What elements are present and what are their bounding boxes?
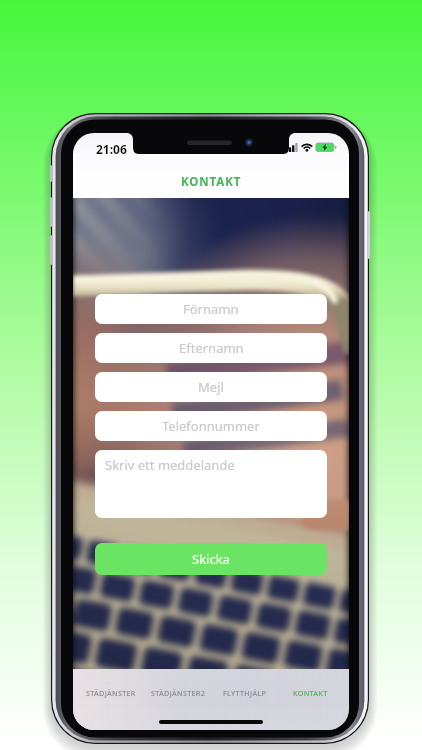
staticText: Förnamn	[183, 300, 239, 318]
button[interactable]: Förnamn	[95, 294, 327, 324]
button[interactable]: Efternamn	[95, 333, 327, 363]
button[interactable]: Skriv ett meddelande	[95, 450, 327, 518]
staticText: 21:06	[96, 141, 127, 157]
button[interactable]: KONTAKT	[286, 677, 334, 709]
staticText: Telefonnummer	[162, 417, 260, 435]
staticText: Skicka	[192, 550, 230, 568]
button[interactable]: STÄDJÄNSTER	[80, 677, 142, 709]
staticText: FLYTTHJÄLP	[223, 688, 267, 698]
button[interactable]: Mejl	[95, 372, 327, 402]
button[interactable]: FLYTTHJÄLP	[216, 677, 274, 709]
button[interactable]: STÄDJÄNSTER2	[144, 677, 212, 709]
staticText: Efternamn	[179, 339, 244, 357]
staticText: Skriv ett meddelande	[105, 456, 235, 474]
staticText: STÄDJÄNSTER	[86, 688, 136, 698]
button[interactable]: Skicka	[95, 543, 327, 575]
button[interactable]: Telefonnummer	[95, 411, 327, 441]
staticText: KONTAKT	[181, 174, 242, 190]
staticText: STÄDJÄNSTER2	[151, 688, 206, 698]
staticText: Mejl	[198, 378, 224, 396]
staticText: KONTAKT	[293, 688, 328, 698]
